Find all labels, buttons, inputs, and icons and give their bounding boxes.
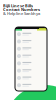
staticText: Bijli Line se Bills: [3, 3, 33, 8]
button[interactable]: [15, 38, 47, 45]
button[interactable]: [15, 67, 47, 74]
button[interactable]: [15, 60, 47, 67]
button[interactable]: [15, 52, 47, 60]
button[interactable]: [15, 30, 47, 38]
staticText: Contact Numbers: [3, 7, 40, 12]
button[interactable]: [15, 45, 47, 52]
staticText: & Helpline Sankhya: [3, 11, 40, 16]
button[interactable]: [15, 74, 47, 82]
button[interactable]: [15, 82, 47, 89]
